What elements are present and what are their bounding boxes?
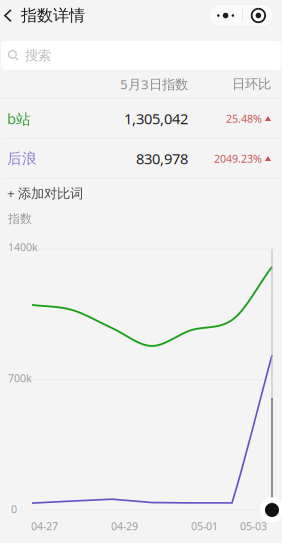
button[interactable]: + 添加对比词 [0, 179, 282, 207]
button[interactable]: b站 [0, 99, 282, 138]
staticText: 5月3日指数 [120, 75, 188, 93]
staticText: 后浪 [7, 149, 37, 167]
staticText: b站 [7, 109, 31, 128]
staticText: 830,978 [136, 149, 188, 168]
staticText: 04-29 [111, 519, 138, 533]
staticText: 搜索 [25, 47, 51, 64]
staticText: 05-03 [240, 519, 267, 533]
staticText: 700k [8, 371, 32, 385]
staticText: 05-01 [191, 519, 218, 533]
button[interactable]: More options [209, 4, 274, 26]
staticText: 日环比 [232, 76, 271, 92]
staticText: 1,305,042 [124, 109, 188, 128]
staticText: 04-27 [31, 519, 58, 533]
button[interactable]: Back [0, 0, 21, 31]
staticText: 1400k [8, 240, 38, 254]
staticText: 0 [11, 502, 17, 516]
button[interactable]: 搜索 [1, 41, 281, 70]
staticText: 25.48% [226, 111, 262, 126]
staticText: 指数 [8, 211, 32, 226]
staticText: 指数详情 [21, 6, 85, 25]
staticText: + 添加对比词 [7, 184, 83, 202]
staticText: 2049.23% [214, 151, 262, 166]
button[interactable]: 后浪 [0, 139, 282, 178]
